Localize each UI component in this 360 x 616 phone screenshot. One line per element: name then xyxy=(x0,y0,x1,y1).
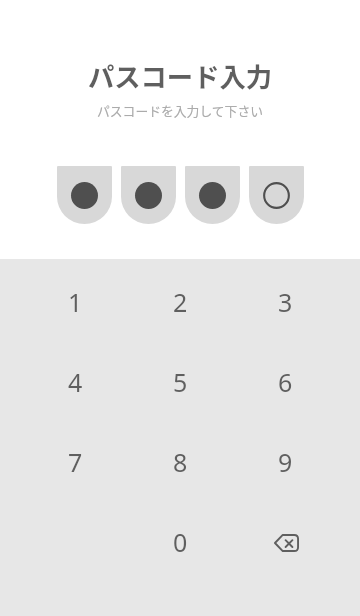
staticText: 7 xyxy=(68,445,83,479)
other: Backspace xyxy=(272,532,299,552)
staticText: パスコードを入力して下さい xyxy=(0,101,360,120)
staticText: 4 xyxy=(68,365,83,399)
staticText: 2 xyxy=(173,285,188,319)
button[interactable]: 4 xyxy=(22,342,128,422)
button[interactable]: 2 xyxy=(128,262,233,342)
button[interactable]: 5 xyxy=(128,342,233,422)
staticText: パスコード入力 xyxy=(0,56,360,94)
staticText: 6 xyxy=(278,365,293,399)
button[interactable]: 8 xyxy=(128,422,233,502)
button[interactable]: 0 xyxy=(128,502,233,582)
staticText: 3 xyxy=(278,285,293,319)
staticText: 1 xyxy=(68,285,83,319)
staticText: 0 xyxy=(173,525,188,559)
button[interactable]: 1 xyxy=(22,262,128,342)
staticText: 9 xyxy=(278,445,293,479)
button[interactable]: 3 xyxy=(233,262,338,342)
button[interactable]: Backspace xyxy=(233,502,338,582)
staticText: 5 xyxy=(173,365,188,399)
button[interactable]: 7 xyxy=(22,422,128,502)
button[interactable]: 9 xyxy=(233,422,338,502)
button[interactable]: 6 xyxy=(233,342,338,422)
staticText: 8 xyxy=(173,445,188,479)
